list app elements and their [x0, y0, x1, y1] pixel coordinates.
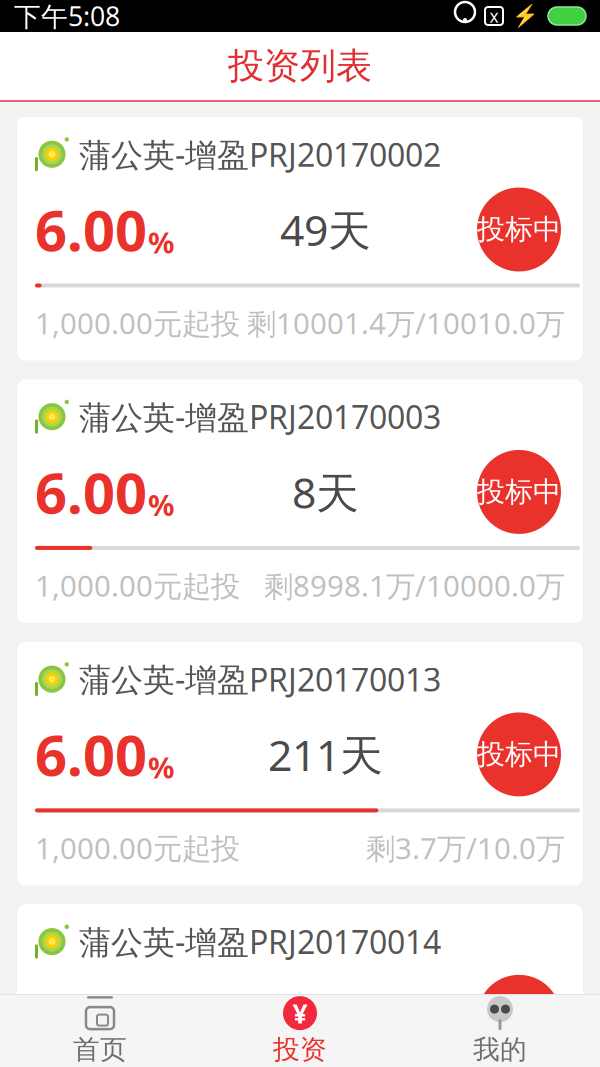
staticText: x [489, 4, 498, 27]
button[interactable]: ¥ [200, 995, 400, 1067]
staticText: 首页 [73, 1033, 127, 1066]
staticText: % [148, 748, 174, 787]
staticText: 8天 [292, 464, 359, 520]
staticText: 蒲公英-增盈PRJ20170013 [79, 658, 441, 700]
staticText: 投资 [273, 1033, 327, 1066]
staticText: 1,000.00元起投 [35, 303, 240, 342]
staticText: 1,000.00元起投 [35, 828, 240, 867]
button[interactable]: 蒲公英-增盈PRJ20170003 [17, 379, 583, 623]
staticText: 剩3.7万/10.0万 [366, 828, 565, 867]
staticText: 投标中 [477, 737, 561, 772]
staticText: 6.00 [35, 192, 147, 267]
staticText: 31天 [280, 988, 371, 1045]
button[interactable]: 我的 [400, 995, 600, 1067]
staticText: 蒲公英-增盈PRJ20170014 [79, 920, 441, 963]
staticText: 下午5:08 [14, 0, 120, 34]
button[interactable]: 蒲公英-增盈PRJ20170014 [17, 904, 583, 1059]
staticText: 蒲公英-增盈PRJ20170002 [79, 133, 441, 175]
staticText: 投标中 [477, 475, 561, 509]
staticText: 211天 [268, 726, 383, 783]
staticText: 6.00 [35, 980, 147, 1054]
staticText: 投标中 [477, 1000, 561, 1034]
staticText: 剩10001.4万/10010.0万 [247, 303, 565, 342]
staticText: ⚡ [512, 4, 539, 28]
staticText: 49天 [280, 201, 371, 258]
staticText: 投标中 [477, 212, 561, 247]
button[interactable]: 首页 [0, 995, 200, 1067]
staticText: 我的 [473, 1033, 527, 1066]
staticText: 剩8998.1万/10000.0万 [264, 566, 565, 605]
staticText: ¥ [292, 995, 307, 1031]
staticText: 6.00 [35, 455, 147, 529]
staticText: % [148, 223, 174, 262]
staticText: % [148, 485, 174, 524]
staticText: 蒲公英-增盈PRJ20170003 [79, 395, 441, 438]
staticText: 1,000.00元起投 [35, 566, 240, 605]
staticText: 投资列表 [228, 44, 372, 88]
staticText: 6.00 [35, 717, 147, 792]
button[interactable]: 蒲公英-增盈PRJ20170013 [17, 642, 583, 885]
button[interactable]: 蒲公英-增盈PRJ20170002 [17, 117, 583, 360]
